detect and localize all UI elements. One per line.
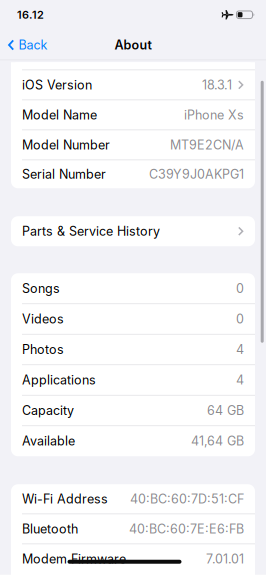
- staticText: Model Name: [22, 107, 97, 122]
- staticText: 0: [236, 281, 244, 296]
- staticText: 40:BC:60:7E:E6:FB: [129, 521, 244, 536]
- staticText: Videos: [22, 311, 64, 327]
- staticText: 7.01.01: [206, 551, 244, 566]
- staticText: Wi-Fi Address: [22, 491, 108, 506]
- staticText: iOS Version: [22, 77, 92, 92]
- staticText: 4: [236, 342, 244, 357]
- staticText: Parts & Service History: [22, 224, 160, 239]
- button[interactable]: iOS Version: [11, 70, 255, 99]
- staticText: 16.12: [17, 8, 44, 21]
- staticText: Photos: [22, 342, 64, 357]
- staticText: Capacity: [22, 403, 74, 418]
- staticText: About: [114, 37, 151, 53]
- staticText: Serial Number: [22, 167, 106, 182]
- staticText: 18.3.1: [202, 77, 232, 92]
- staticText: Back: [18, 37, 47, 53]
- staticText: Available: [22, 433, 75, 449]
- button[interactable]: Parts & Service History: [11, 216, 255, 246]
- staticText: 0: [236, 311, 244, 327]
- staticText: 41,64 GB: [191, 433, 244, 449]
- staticText: MT9E2CN/A: [170, 137, 244, 152]
- staticText: Bluetooth: [22, 521, 78, 536]
- staticText: 4: [236, 372, 244, 388]
- staticText: iPhone Xs: [184, 107, 244, 122]
- staticText: C39Y9J0AKPG1: [149, 167, 244, 182]
- staticText: Applications: [22, 372, 96, 388]
- staticText: Modem Firmware: [22, 551, 126, 566]
- staticText: 64 GB: [207, 403, 244, 418]
- staticText: 40:BC:60:7D:51:CF: [130, 491, 244, 506]
- staticText: Model Number: [22, 137, 110, 152]
- staticText: Songs: [22, 281, 60, 296]
- button[interactable]: Back: [0, 37, 47, 53]
